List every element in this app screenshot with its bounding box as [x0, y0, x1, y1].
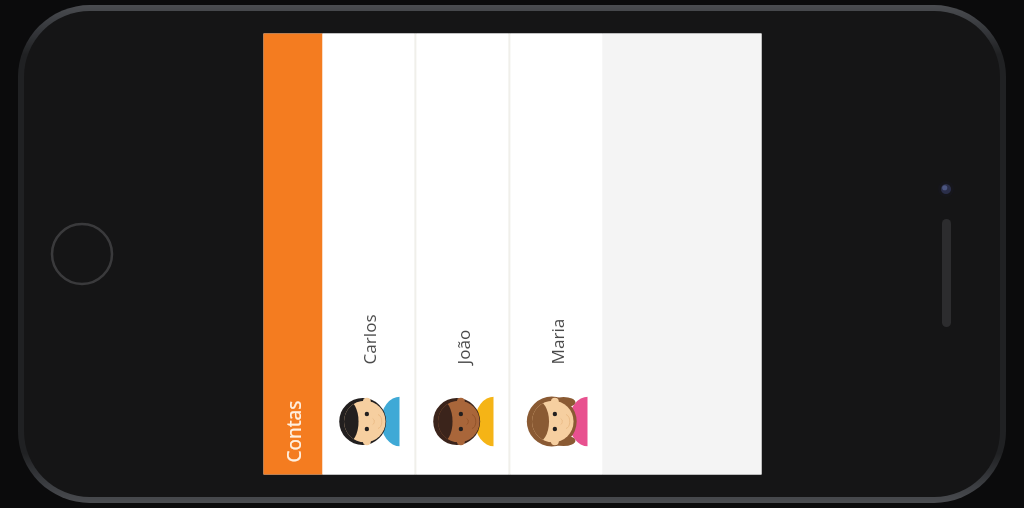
button[interactable]: Carlos [322, 33, 414, 474]
staticText: Carlos [357, 313, 380, 364]
staticText: Maria [545, 318, 568, 364]
button[interactable]: Maria [510, 33, 602, 474]
button[interactable]: Contas [263, 33, 322, 474]
staticText: João [451, 329, 474, 364]
button[interactable]: João [416, 33, 508, 474]
button[interactable]: Home [50, 222, 114, 286]
staticText: Contas [280, 400, 306, 462]
